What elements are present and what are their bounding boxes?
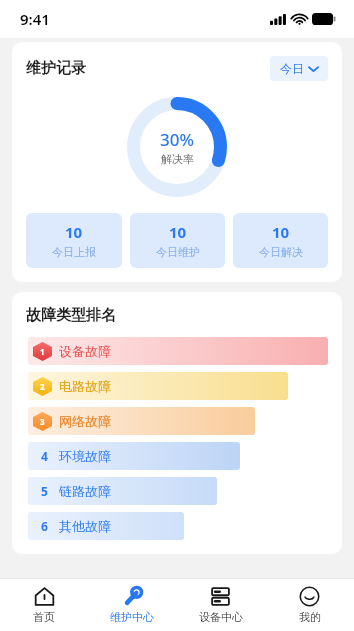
button[interactable]: 1 (28, 337, 328, 365)
staticText: 维护中心 (110, 610, 154, 624)
button[interactable]: 今日 (270, 56, 328, 81)
staticText: 1 (40, 346, 45, 357)
button[interactable]: 6 (28, 512, 328, 540)
button[interactable]: 10 (26, 213, 122, 268)
staticText: 维护记录 (26, 59, 86, 78)
button[interactable]: 3 (28, 407, 328, 435)
staticText: 今日上报 (52, 245, 96, 259)
staticText: 10 (169, 222, 187, 242)
staticText: 10 (65, 222, 83, 242)
staticText: 其他故障 (59, 518, 111, 534)
staticText: 解决率 (161, 152, 194, 166)
staticText: 3 (40, 416, 45, 427)
staticText: 网络故障 (59, 413, 111, 429)
staticText: 环境故障 (59, 448, 111, 464)
button[interactable]: 10 (130, 213, 225, 268)
staticText: 30% (160, 128, 194, 151)
button[interactable]: 设备中心 (176, 579, 265, 631)
button[interactable]: 维护中心 (88, 579, 176, 631)
button[interactable]: 4 (28, 442, 328, 470)
staticText: 设备故障 (59, 343, 111, 359)
staticText: 9:41 (20, 9, 50, 29)
staticText: 电路故障 (59, 378, 111, 394)
staticText: 今日 (280, 61, 304, 76)
button[interactable]: 首页 (0, 579, 88, 631)
staticText: 今日解决 (259, 245, 303, 259)
button[interactable]: 2 (28, 372, 328, 400)
staticText: 5 (41, 483, 48, 499)
button[interactable]: 5 (28, 477, 328, 505)
staticText: 我的 (299, 610, 321, 624)
staticText: 4 (41, 448, 48, 464)
staticText: 链路故障 (59, 483, 111, 499)
staticText: 10 (272, 222, 290, 242)
button[interactable]: 10 (233, 213, 328, 268)
staticText: 设备中心 (199, 610, 243, 624)
staticText: 故障类型排名 (26, 306, 116, 325)
button[interactable]: 我的 (265, 579, 354, 631)
staticText: 首页 (33, 610, 55, 624)
staticText: 6 (41, 518, 48, 534)
staticText: 2 (40, 381, 45, 392)
staticText: 今日维护 (156, 245, 200, 259)
